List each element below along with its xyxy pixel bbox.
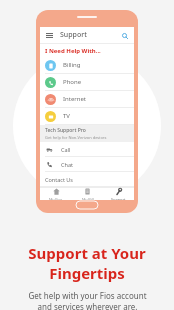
staticText: Call — [61, 146, 71, 153]
staticText: I Need Help With... — [45, 47, 101, 55]
staticText: Phone — [63, 78, 82, 86]
button[interactable]: Internet — [40, 91, 134, 108]
button[interactable]: Search — [120, 31, 129, 40]
staticText: My Fios — [49, 197, 63, 200]
button[interactable]: Phone — [40, 74, 134, 91]
staticText: Internet — [63, 95, 87, 103]
staticText: Billing — [63, 61, 81, 69]
button[interactable]: TV — [40, 108, 134, 125]
button[interactable]: Support — [103, 188, 134, 200]
staticText: Get help with your Fios account and serv… — [28, 290, 147, 310]
staticText: My Bill — [82, 197, 94, 200]
staticText: TV — [63, 112, 70, 120]
button[interactable]: Menu — [45, 31, 54, 40]
button[interactable]: Billing — [40, 57, 134, 74]
staticText: Get help for Non-Verizon devices — [45, 135, 107, 140]
staticText: Support — [111, 197, 126, 200]
button[interactable]: My Fios — [40, 188, 72, 200]
staticText: Support at Your Fingertips — [0, 243, 174, 283]
staticText: Contact Us — [45, 176, 73, 183]
staticText: Support — [60, 30, 87, 40]
button[interactable]: Call — [40, 142, 134, 157]
button[interactable]: Chat — [40, 157, 134, 172]
staticText: Tech Support Pro — [45, 127, 86, 134]
button[interactable]: Contact Us — [40, 172, 134, 187]
staticText: Chat — [61, 161, 73, 168]
button[interactable]: My Bill — [72, 188, 103, 200]
